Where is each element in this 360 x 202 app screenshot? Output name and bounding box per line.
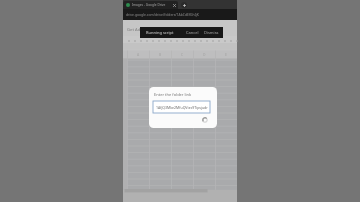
button[interactable]: Toolbar action 9 [180, 38, 186, 43]
button[interactable]: Toolbar action 18 [234, 38, 240, 43]
button[interactable]: Toolbar action 10 [186, 38, 192, 43]
button[interactable]: New tab [181, 2, 187, 8]
button[interactable]: Toolbar action 14 [210, 38, 216, 43]
button[interactable]: Toolbar action 0 [126, 38, 132, 43]
button[interactable]: Toolbar action 6 [162, 38, 168, 43]
button[interactable]: Close tab [173, 4, 176, 7]
button[interactable]: Toolbar action 5 [156, 38, 162, 43]
button[interactable]: 1AfjQ3Mke2MfuQVtec9Tipsjudr [153, 101, 210, 113]
button[interactable]: Toolbar action 2 [138, 38, 144, 43]
button[interactable]: Toolbar action 1 [132, 38, 138, 43]
button[interactable]: Images - Google Drive [123, 1, 178, 9]
staticText: Cancel [186, 30, 199, 35]
staticText: B [159, 52, 162, 57]
button[interactable]: Toolbar action 3 [144, 38, 150, 43]
button[interactable]: Toolbar action 7 [168, 38, 174, 43]
staticText: Dismiss [204, 30, 219, 35]
button[interactable]: Toolbar action 16 [222, 38, 228, 43]
button[interactable]: Toolbar action 13 [204, 38, 210, 43]
button[interactable]: drive.google.com/drive/folders/1AbCdEfGh… [123, 9, 237, 20]
button[interactable]: A [127, 52, 149, 57]
staticText: E [225, 52, 227, 57]
staticText: 1AfjQ3Mke2MfuQVtec9Tipsjudr [156, 105, 208, 110]
button[interactable]: Get Add-ons [127, 27, 152, 33]
button[interactable]: Toolbar action 11 [192, 38, 198, 43]
staticText: Enter the folder link [154, 92, 192, 97]
staticText: D [203, 52, 206, 57]
button[interactable]: B [149, 52, 171, 57]
staticText: A [137, 52, 140, 57]
button[interactable]: Cancel [186, 30, 199, 35]
staticText: C [181, 52, 184, 57]
button[interactable]: Toolbar action 15 [216, 38, 222, 43]
button[interactable]: Toolbar action 12 [198, 38, 204, 43]
button[interactable]: Toolbar action 4 [150, 38, 156, 43]
button[interactable]: Dismiss [204, 30, 219, 35]
staticText: drive.google.com/drive/folders/1AbCdEfGh… [126, 12, 199, 17]
staticText: Running script [146, 30, 174, 35]
button[interactable]: Toolbar action 8 [174, 38, 180, 43]
staticText: Images - Google Drive [132, 3, 166, 7]
button[interactable]: Toolbar action 17 [228, 38, 234, 43]
